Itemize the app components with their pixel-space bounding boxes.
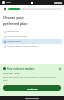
staticText: Your selection matters [7,67,58,70]
button[interactable]: Option number two [2,34,62,39]
button[interactable]: Selected item [2,39,62,44]
button[interactable]: Close [2,6,7,11]
staticText: Selection · plan [3,72,20,75]
button[interactable]: Option one [2,29,62,34]
button[interactable]: Another longer option choice [2,44,62,49]
staticText: Selected item [7,40,21,43]
button[interactable]: More info [58,67,61,70]
staticText: Choose your [3,15,25,20]
staticText: preferred plan [3,21,28,26]
staticText: Short description text that explains the… [3,76,61,82]
button[interactable]: Continue [3,85,61,91]
staticText: Another longer option choice [7,45,38,48]
staticText: Option one [7,30,19,33]
staticText: Option number two [7,35,28,38]
staticText: Continue [27,87,38,90]
